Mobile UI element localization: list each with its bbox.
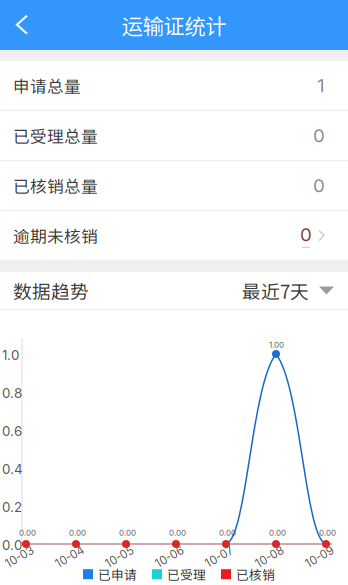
- staticText: 10-09: [304, 550, 335, 564]
- staticText: 0.00: [269, 528, 286, 538]
- staticText: 已核销: [236, 565, 275, 583]
- staticText: 0.00: [319, 528, 336, 538]
- staticText: 10-05: [104, 550, 135, 564]
- staticText: 10-07: [204, 550, 234, 564]
- button[interactable]: Back: [0, 0, 44, 50]
- staticText: 0: [313, 124, 325, 147]
- staticText: 0.8: [2, 385, 22, 401]
- staticText: 1.00: [269, 340, 284, 350]
- button[interactable]: 最近7天: [242, 277, 334, 304]
- staticText: 0.00: [19, 528, 36, 538]
- staticText: 10-04: [54, 550, 85, 564]
- staticText: 0.4: [2, 461, 23, 477]
- staticText: 0.00: [119, 528, 136, 538]
- staticText: 已核销总量: [13, 173, 98, 197]
- staticText: 0.00: [219, 528, 236, 538]
- staticText: 已受理总量: [13, 123, 98, 147]
- staticText: 运输证统计: [121, 10, 226, 40]
- staticText: 申请总量: [13, 73, 81, 97]
- staticText: 10-08: [254, 550, 285, 564]
- staticText: 0.00: [69, 528, 86, 538]
- staticText: 数据趋势: [13, 277, 89, 304]
- staticText: 已受理: [167, 565, 206, 583]
- staticText: 0: [300, 223, 312, 246]
- staticText: 最近7天: [242, 277, 309, 304]
- staticText: 0.6: [2, 423, 22, 439]
- staticText: 0.0: [2, 537, 22, 553]
- staticText: 0.2: [2, 499, 22, 515]
- staticText: 已申请: [98, 565, 137, 583]
- staticText: 10-06: [154, 550, 185, 564]
- button[interactable]: 已受理总量: [0, 111, 348, 160]
- staticText: 0.00: [169, 528, 186, 538]
- button[interactable]: 逾期未核销: [0, 211, 348, 260]
- staticText: 1.0: [2, 347, 19, 363]
- staticText: 0: [313, 174, 325, 197]
- staticText: 1: [317, 74, 325, 97]
- staticText: 逾期未核销: [13, 223, 98, 247]
- staticText: 10-03: [4, 550, 35, 564]
- button[interactable]: 已核销总量: [0, 161, 348, 210]
- button[interactable]: 申请总量: [0, 61, 348, 110]
